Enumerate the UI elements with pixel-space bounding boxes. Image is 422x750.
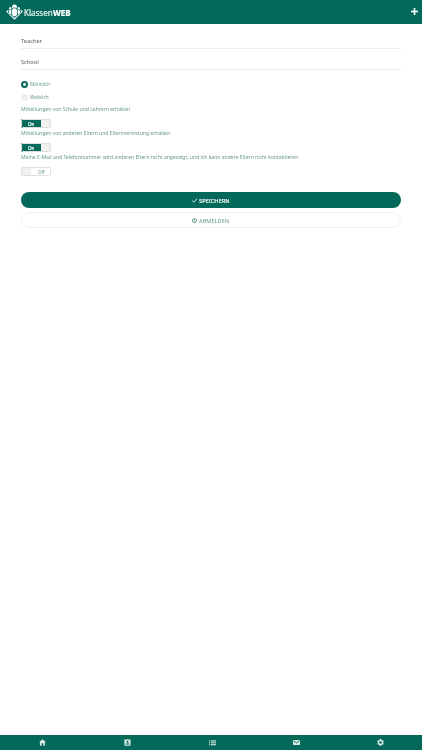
button[interactable]: Messages [254, 735, 338, 750]
button[interactable]: SPEICHERN [21, 192, 401, 208]
button[interactable]: List [170, 735, 254, 750]
staticText: Mitteilungen von anderen Eltern und Elte… [21, 130, 171, 137]
staticText: Klassen [24, 7, 53, 18]
staticText: WEB [53, 7, 71, 18]
staticText: On [28, 145, 35, 151]
button[interactable]: Add [403, 0, 422, 22]
button[interactable]: Off [21, 167, 51, 176]
button[interactable]: Männlich [18, 78, 55, 90]
staticText: School [21, 58, 39, 66]
staticText: ABMELDEN [199, 217, 230, 224]
button[interactable]: ABMELDEN [21, 212, 401, 228]
button[interactable]: Contacts [85, 735, 170, 750]
staticText: Männlich [30, 81, 51, 87]
button[interactable]: On [21, 119, 51, 128]
button[interactable]: Settings [338, 735, 422, 750]
button[interactable]: Home [0, 735, 85, 750]
staticText: Teacher [21, 37, 42, 45]
staticText: Weiblich [30, 94, 49, 100]
button[interactable]: Weiblich [18, 91, 53, 103]
staticText: Off [38, 169, 45, 175]
staticText: On [28, 121, 35, 127]
button[interactable]: On [21, 143, 51, 152]
staticText: Mitteilungen von Schule und Lehrern erha… [21, 106, 131, 113]
staticText: SPEICHERN [199, 197, 230, 204]
staticText: Meine E-Mail und Telefonnummer wird ande… [21, 154, 299, 161]
